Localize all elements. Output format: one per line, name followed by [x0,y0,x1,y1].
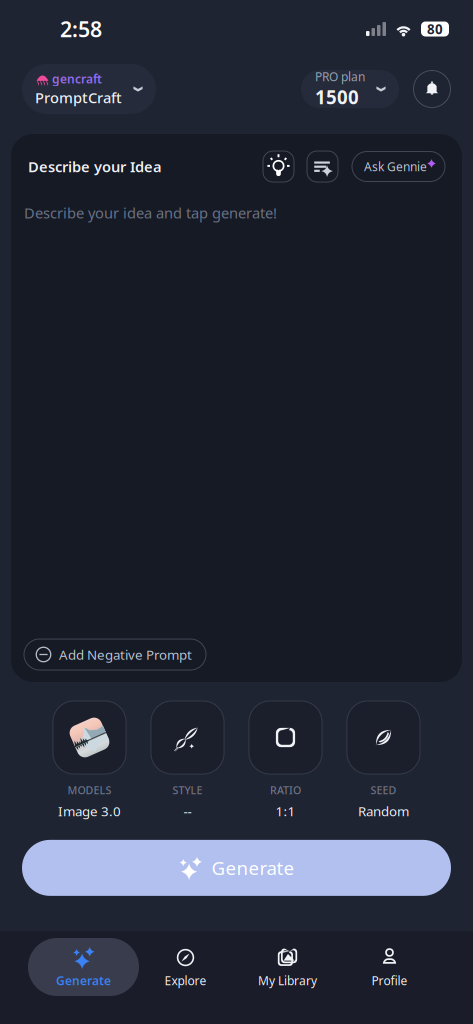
staticText: Explore [164,972,206,988]
staticText: Ask Gennie [364,158,427,174]
button[interactable]: SEED [334,701,432,820]
staticText: My Library [258,972,317,988]
staticText: Describe your idea and tap generate! [24,203,277,222]
staticText: -- [183,802,191,820]
button[interactable]: Explore [134,938,236,996]
staticText: Profile [371,972,407,988]
staticText: gencraft [52,71,102,87]
staticText: SEED [370,783,396,797]
button[interactable]: Enhance prompt [294,151,338,182]
button[interactable]: Ask Gennie [338,151,445,181]
staticText: Image 3.0 [58,802,121,820]
button[interactable]: Notifications [413,70,451,108]
staticText: Random [358,802,409,820]
button[interactable]: RATIO [236,701,334,820]
staticText: 1500 [315,85,359,109]
staticText: RATIO [270,783,301,797]
button[interactable]: gencraft [22,64,156,114]
staticText: Generate [56,972,111,988]
staticText: 80 [427,20,443,38]
button[interactable]: STYLE [138,701,236,820]
staticText: PromptCraft [35,88,122,107]
button[interactable]: MODELS [40,701,138,820]
button[interactable]: Prompt ideas [263,151,294,182]
staticText: 2:58 [60,15,102,43]
button[interactable]: Generate [32,938,134,996]
staticText: Add Negative Prompt [59,646,192,663]
staticText: MODELS [67,783,111,797]
staticText: Generate [211,855,294,880]
staticText: PRO plan [315,69,365,84]
button[interactable]: Profile [338,938,440,996]
button[interactable]: PRO plan [301,70,399,108]
button[interactable]: Generate [22,840,451,896]
staticText: STYLE [172,783,202,797]
button[interactable]: My Library [236,938,338,996]
staticText: Describe your Idea [28,157,162,176]
button[interactable]: Add Negative Prompt [24,639,206,670]
staticText: 1:1 [275,802,295,820]
